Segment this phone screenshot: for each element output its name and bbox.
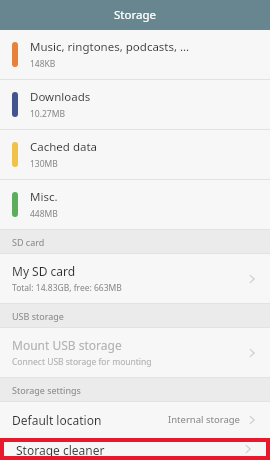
staticText: SD card bbox=[12, 236, 45, 248]
button[interactable]: Music, ringtones, podcasts, … bbox=[0, 30, 270, 79]
staticText: Storage settings bbox=[12, 384, 81, 396]
staticText: 10.27MB bbox=[30, 108, 65, 120]
staticText: Mount USB storage bbox=[12, 337, 122, 353]
staticText: 448MB bbox=[30, 208, 58, 220]
button[interactable]: Default location bbox=[0, 402, 270, 437]
button[interactable]: Downloads bbox=[0, 80, 270, 129]
staticText: Music, ringtones, podcasts, … bbox=[30, 39, 190, 55]
staticText: Default location bbox=[12, 412, 168, 428]
button[interactable]: Mount USB storage bbox=[0, 328, 270, 377]
staticText: Cached data bbox=[30, 139, 98, 155]
staticText: Connect USB storage for mounting bbox=[12, 356, 152, 368]
staticText: USB storage bbox=[12, 310, 64, 322]
staticText: Internal storage bbox=[168, 413, 240, 426]
staticText: Storage cleaner bbox=[16, 442, 242, 456]
staticText: Downloads bbox=[30, 89, 91, 105]
staticText: Storage bbox=[114, 7, 156, 23]
button[interactable]: Storage cleaner bbox=[4, 442, 266, 456]
staticText: Misc. bbox=[30, 189, 58, 205]
button[interactable]: My SD card bbox=[0, 254, 270, 303]
staticText: 148KB bbox=[30, 58, 56, 70]
button[interactable]: Cached data bbox=[0, 130, 270, 179]
staticText: Total: 14.83GB, free: 663MB bbox=[12, 282, 122, 294]
staticText: My SD card bbox=[12, 263, 76, 279]
button[interactable]: Misc. bbox=[0, 180, 270, 229]
staticText: 130MB bbox=[30, 158, 58, 170]
